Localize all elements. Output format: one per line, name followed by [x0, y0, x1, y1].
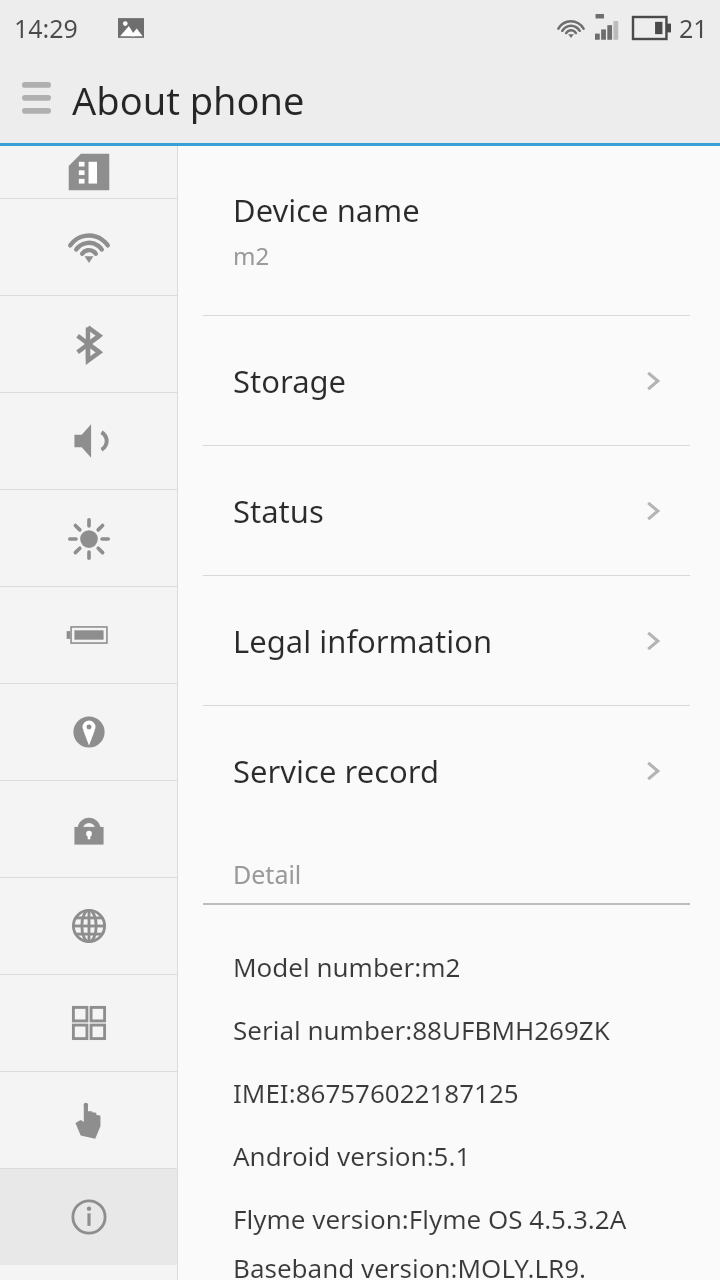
staticText: 14:29: [14, 11, 78, 45]
button[interactable]: Display: [0, 490, 177, 586]
button[interactable]: Apps: [0, 975, 177, 1071]
button[interactable]: Menu: [14, 78, 58, 122]
button[interactable]: Legal information: [178, 576, 720, 705]
button[interactable]: Accessibility: [0, 1072, 177, 1168]
staticText: 21: [679, 11, 708, 45]
staticText: Android version:5.1: [233, 1138, 471, 1173]
staticText: Model number:m2: [233, 949, 461, 984]
button[interactable]: Language: [0, 878, 177, 974]
button[interactable]: Status: [178, 446, 720, 575]
staticText: m2: [233, 239, 270, 272]
staticText: Serial number:88UFBMH269ZK: [233, 1012, 610, 1047]
staticText: Status: [233, 490, 324, 532]
button[interactable]: Battery: [0, 587, 177, 683]
staticText: About phone: [72, 74, 305, 126]
staticText: Detail: [233, 857, 302, 891]
button[interactable]: Service record: [178, 706, 720, 835]
button[interactable]: Wi-Fi: [0, 199, 177, 295]
staticText: IMEI:867576022187125: [233, 1075, 519, 1110]
button[interactable]: Location: [0, 684, 177, 780]
staticText: Service record: [233, 750, 440, 792]
button[interactable]: Sound: [0, 393, 177, 489]
staticText: Device name: [233, 189, 420, 231]
staticText: Legal information: [233, 620, 493, 662]
button[interactable]: About phone: [0, 1169, 177, 1265]
button[interactable]: Device name: [178, 146, 720, 315]
button[interactable]: Storage: [178, 316, 720, 445]
button[interactable]: Security: [0, 781, 177, 877]
button[interactable]: Bluetooth: [0, 296, 177, 392]
staticText: Baseband version:MOLY.LR9.: [233, 1250, 587, 1280]
button[interactable]: SIM: [0, 146, 177, 198]
staticText: Flyme version:Flyme OS 4.5.3.2A: [233, 1201, 627, 1236]
staticText: Storage: [233, 360, 347, 402]
